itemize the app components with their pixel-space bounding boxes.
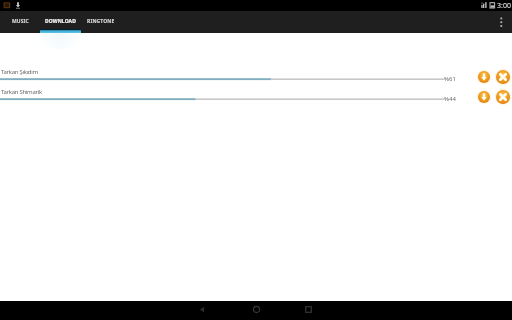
button[interactable]: Pause download (478, 91, 490, 103)
staticText: MUSIC (12, 18, 29, 25)
button[interactable]: RINGTONE (81, 11, 121, 33)
button[interactable]: More options (490, 11, 512, 33)
staticText: %61 (444, 75, 456, 83)
button[interactable]: DOWNLOAD (40, 11, 81, 33)
button[interactable]: Tarkan Şıkıdım (0, 65, 512, 85)
button[interactable]: Recent apps (300, 301, 316, 320)
button[interactable]: Back (194, 301, 210, 320)
button[interactable]: Pause download (478, 71, 490, 83)
button[interactable]: MUSIC (0, 11, 40, 33)
button[interactable]: Cancel download (496, 70, 510, 84)
staticText: Tarkan Şıkıdım (1, 68, 38, 76)
staticText: Tarkan Shimarik (1, 88, 42, 96)
button[interactable]: Cancel download (496, 90, 510, 104)
button[interactable]: Home (248, 301, 264, 320)
button[interactable]: Tarkan Shimarik (0, 85, 512, 105)
staticText: DOWNLOAD (45, 18, 76, 25)
staticText: %44 (444, 95, 456, 103)
staticText: RINGTONE (87, 18, 115, 25)
staticText: 3:00 (497, 1, 511, 11)
